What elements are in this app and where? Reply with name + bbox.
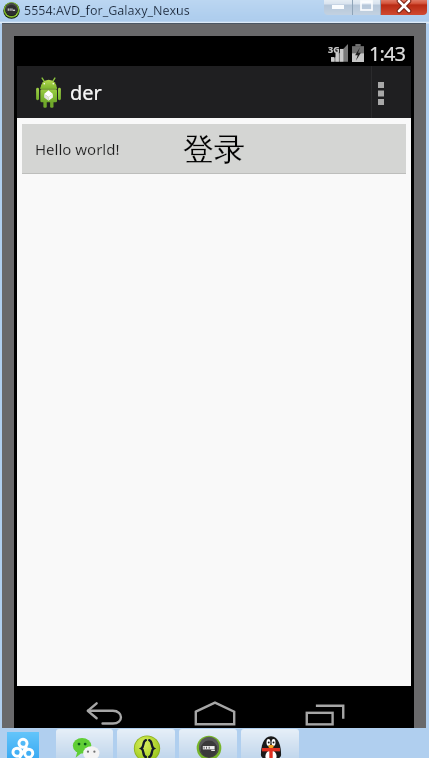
staticText: 1:43 [369, 40, 406, 67]
button[interactable]: Close [381, 0, 427, 15]
button[interactable]: Back [34, 686, 144, 728]
staticText: der [70, 79, 102, 106]
button[interactable]: System menu [3, 2, 20, 18]
staticText: 5554:AVD_for_Galaxy_Nexus [24, 2, 190, 19]
button[interactable]: WeChat [56, 729, 113, 758]
button[interactable]: Maximize [353, 0, 380, 15]
button[interactable]: Android SDK [179, 729, 237, 758]
staticText: 3G [328, 43, 340, 55]
button[interactable]: Baidu Netdisk [7, 732, 39, 758]
staticText: 登录 [183, 130, 245, 169]
button[interactable]: QQ [241, 729, 299, 758]
button[interactable]: Minimize [324, 0, 352, 15]
button[interactable]: Hello world! [22, 124, 406, 173]
button[interactable]: More options [358, 66, 411, 118]
staticText: Hello world! [35, 139, 120, 159]
button[interactable]: Editor [117, 729, 175, 758]
button[interactable]: Home [144, 686, 254, 728]
button[interactable]: Recent apps [254, 686, 364, 728]
